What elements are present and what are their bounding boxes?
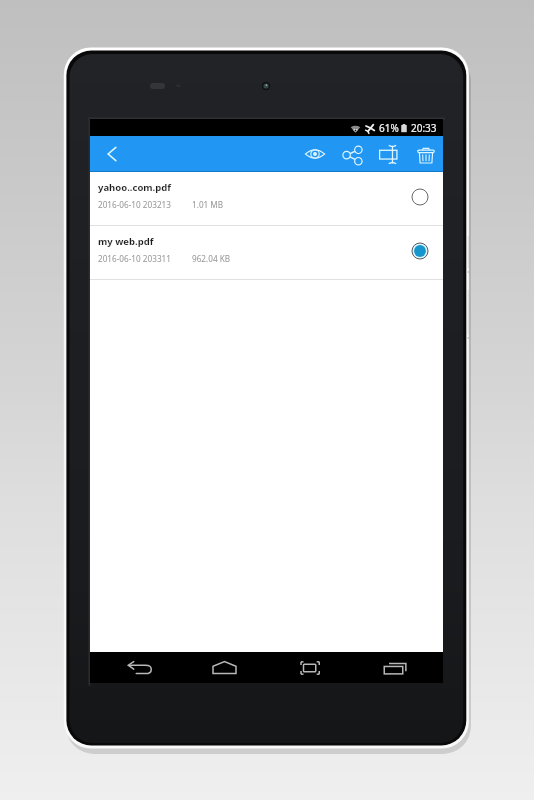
button[interactable]: Recents	[374, 652, 414, 683]
staticText: 962.04 KB	[192, 253, 231, 264]
button[interactable]: Selected	[410, 241, 430, 261]
staticText: 20:33	[411, 121, 437, 135]
button[interactable]: Delete	[414, 142, 438, 166]
button[interactable]: Back	[119, 652, 159, 683]
button[interactable]: yahoo..com.pdf	[90, 172, 443, 226]
staticText: yahoo..com.pdf	[98, 181, 171, 194]
button[interactable]: Rename	[377, 142, 401, 166]
staticText: my web.pdf	[98, 235, 154, 248]
button[interactable]: Screenshot	[289, 652, 329, 683]
button[interactable]: View	[303, 142, 327, 166]
staticText: 2016-06-10 203311	[98, 253, 171, 264]
button[interactable]: Home	[204, 652, 244, 683]
button[interactable]: my web.pdf	[90, 226, 443, 280]
staticText: 1.01 MB	[192, 199, 224, 210]
button[interactable]: Select	[410, 187, 430, 207]
staticText: 61%	[379, 121, 399, 135]
button[interactable]: Back	[100, 142, 124, 166]
staticText: 2016-06-10 203213	[98, 199, 171, 210]
button[interactable]: Share	[340, 142, 364, 166]
